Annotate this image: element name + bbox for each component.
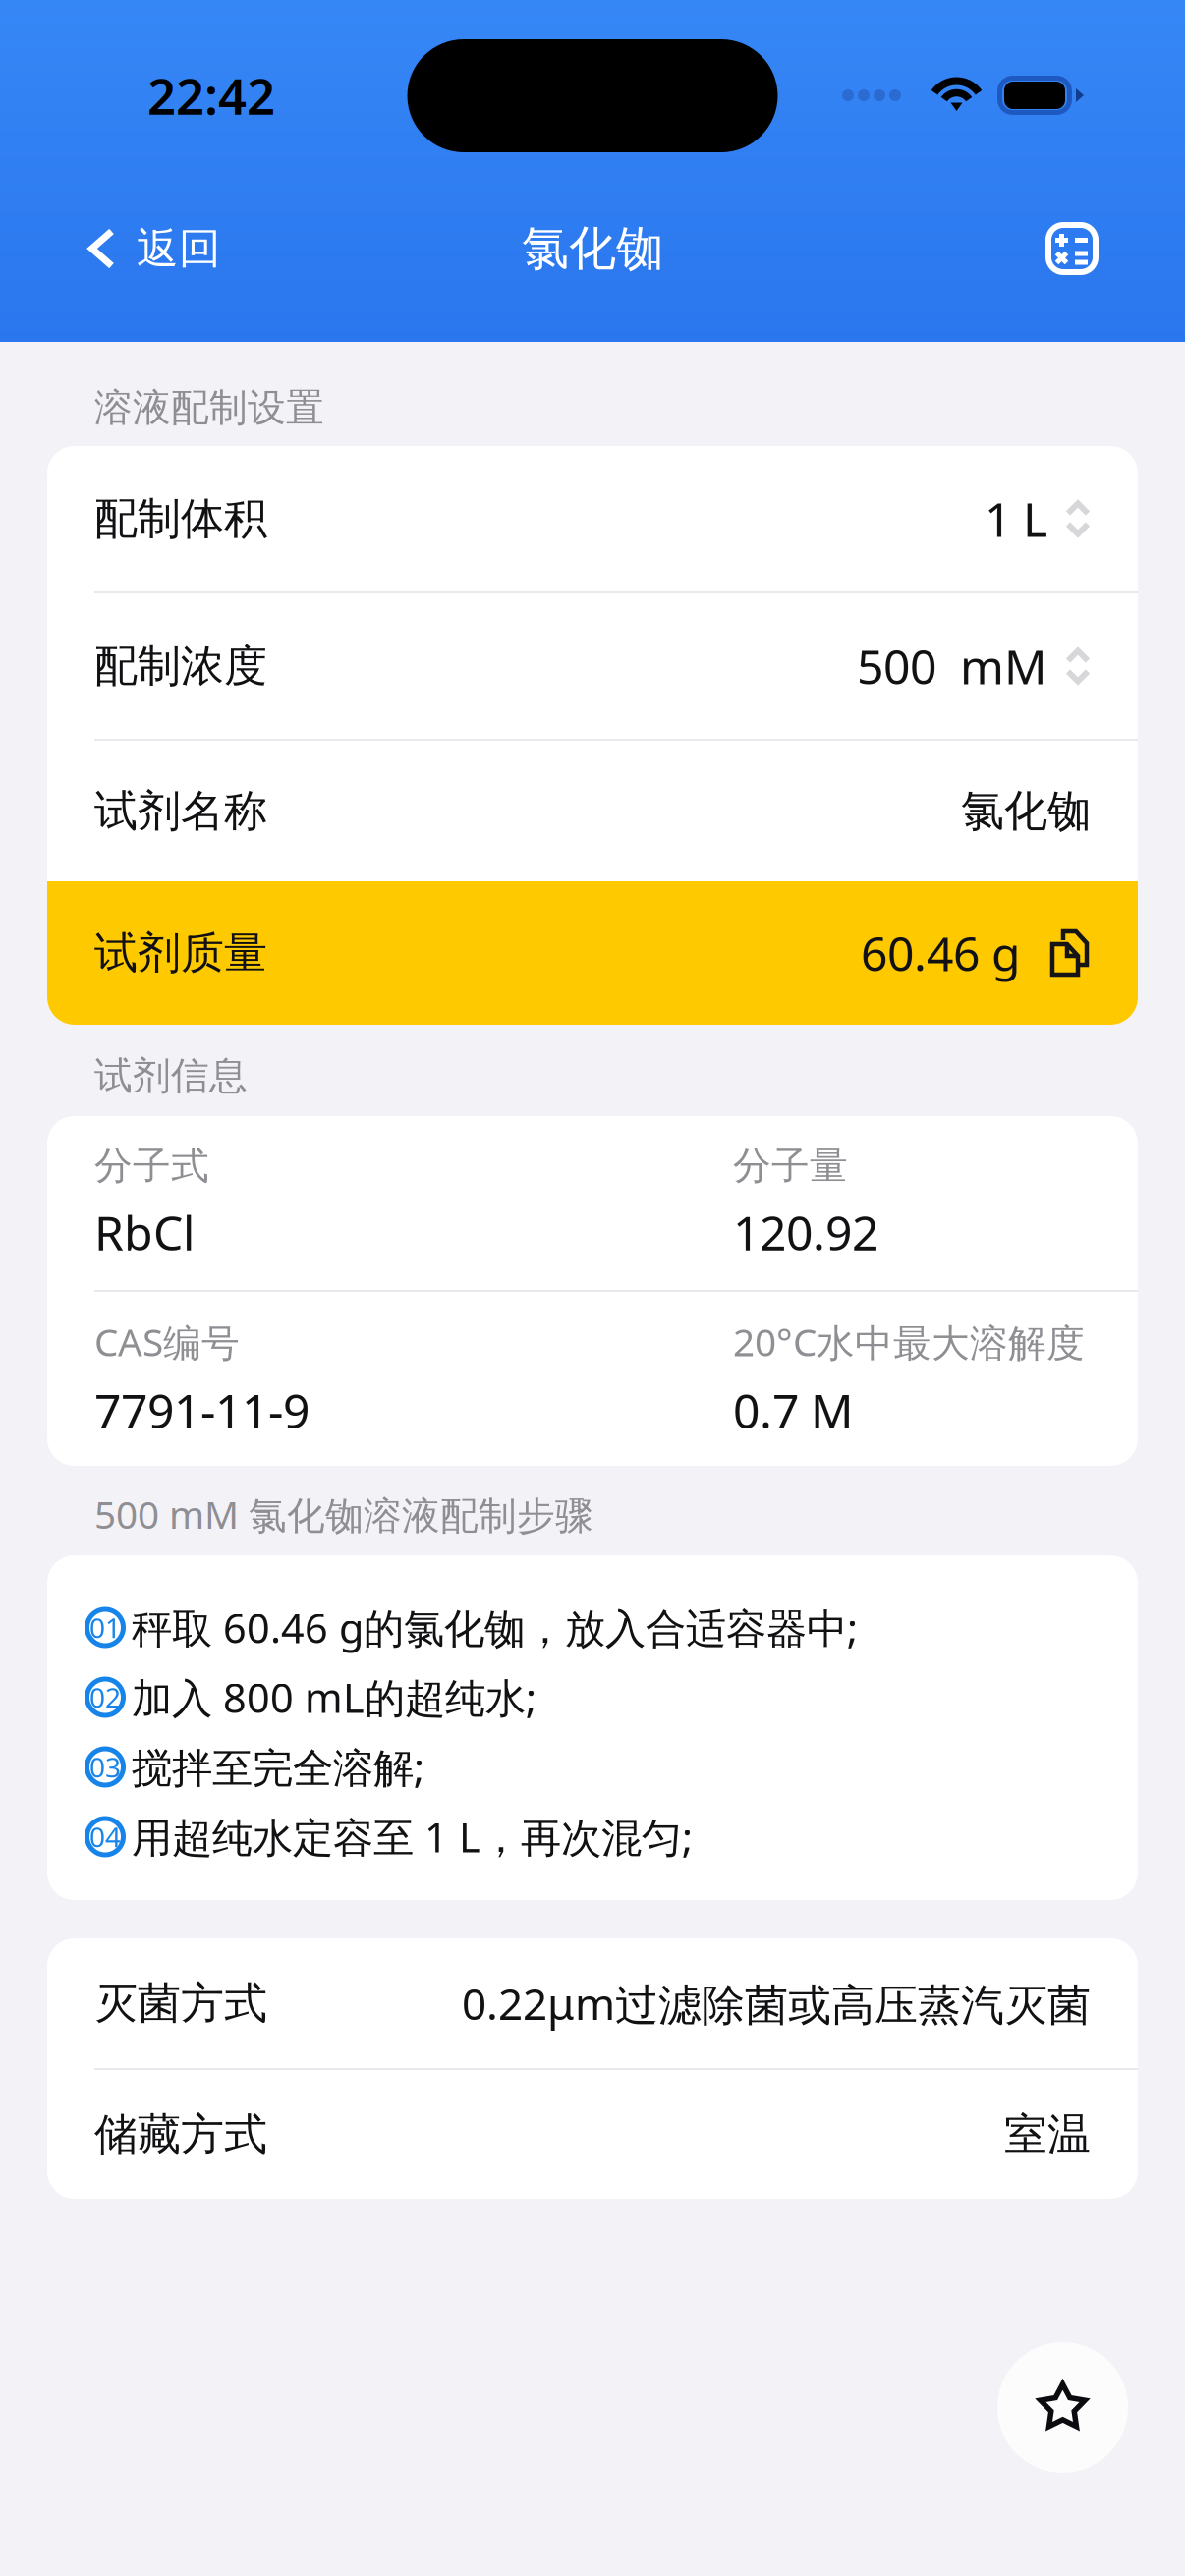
staticText: 试剂名称 xyxy=(94,784,267,838)
button[interactable]: 试剂质量 xyxy=(47,881,1138,1025)
staticText: 0.7 M xyxy=(733,1379,854,1441)
staticText: 灭菌方式 xyxy=(94,1977,267,2030)
staticText: 分子式 xyxy=(94,1142,209,1189)
button[interactable]: 收藏 xyxy=(997,2342,1128,2473)
staticText: 返回 xyxy=(137,223,221,274)
staticText: 配制体积 xyxy=(94,492,267,545)
staticText: 500 mM xyxy=(857,635,1047,697)
staticText: 03 xyxy=(89,1749,121,1785)
staticText: 搅拌至完全溶解; xyxy=(132,1740,424,1794)
staticText: 500 mM 氯化铷溶液配制步骤 xyxy=(94,1489,593,1539)
button[interactable]: 试剂名称 xyxy=(47,741,1138,881)
staticText: 120.92 xyxy=(733,1201,878,1264)
button[interactable]: 配制浓度 xyxy=(47,593,1138,739)
staticText: CAS编号 xyxy=(94,1316,240,1367)
staticText: 试剂信息 xyxy=(94,1053,248,1099)
staticText: 60.46 g xyxy=(861,922,1021,984)
button[interactable]: 返回 xyxy=(0,195,245,303)
staticText: 02 xyxy=(89,1679,121,1715)
staticText: 氯化铷 xyxy=(961,784,1091,838)
staticText: 溶液配制设置 xyxy=(94,384,324,431)
staticText: 分子量 xyxy=(733,1142,848,1189)
staticText: 7791-11-9 xyxy=(94,1379,310,1441)
staticText: 试剂质量 xyxy=(94,926,267,980)
button[interactable]: 配制体积 xyxy=(47,446,1138,591)
staticText: 22:42 xyxy=(147,62,275,128)
staticText: 加入 800 mL的超纯水; xyxy=(132,1670,536,1724)
staticText: 04 xyxy=(89,1818,121,1855)
staticText: 20°C水中最大溶解度 xyxy=(733,1316,1085,1367)
button[interactable]: 计算器 xyxy=(1045,195,1185,303)
staticText: 储藏方式 xyxy=(94,2108,267,2161)
staticText: 1 L xyxy=(985,487,1047,550)
staticText: 01 xyxy=(89,1609,121,1646)
staticText: 室温 xyxy=(1004,2108,1091,2161)
staticText: 配制浓度 xyxy=(94,640,267,693)
staticText: 0.22μm过滤除菌或高压蒸汽灭菌 xyxy=(462,1974,1091,2032)
staticText: 氯化铷 xyxy=(522,220,663,278)
staticText: RbCl xyxy=(94,1201,195,1264)
staticText: 用超纯水定容至 1 L，再次混匀; xyxy=(132,1810,693,1864)
staticText: 秤取 60.46 g的氯化铷，放入合适容器中; xyxy=(132,1601,858,1654)
